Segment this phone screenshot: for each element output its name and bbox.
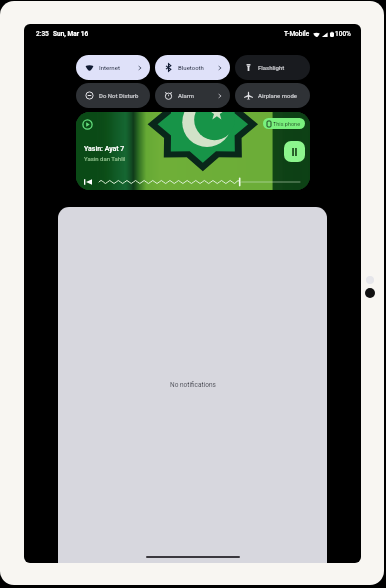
staticText: Flashlight bbox=[258, 64, 285, 71]
button[interactable]: Do Not Disturb bbox=[76, 83, 150, 108]
staticText: This phone bbox=[273, 121, 301, 127]
staticText: Yasin dan Tahlil bbox=[84, 155, 126, 162]
staticText: Yasin: Ayat 7 bbox=[84, 145, 125, 153]
staticText: Bluetooth bbox=[178, 64, 204, 71]
staticText: Alarm bbox=[178, 92, 195, 99]
button[interactable]: Pause bbox=[284, 141, 305, 162]
staticText: Airplane mode bbox=[258, 92, 298, 99]
button[interactable]: Internet bbox=[76, 55, 150, 80]
button[interactable]: Bluetooth bbox=[155, 55, 230, 80]
button[interactable]: Alarm bbox=[155, 83, 230, 108]
staticText: Do Not Disturb bbox=[99, 92, 139, 99]
staticText: No notifications bbox=[170, 381, 216, 389]
button[interactable]: Flashlight bbox=[235, 55, 310, 80]
staticText: 2:35 bbox=[36, 30, 49, 38]
button[interactable]: This phone bbox=[263, 118, 305, 129]
button[interactable]: Previous bbox=[84, 178, 92, 186]
staticText: T-Mobile bbox=[284, 30, 310, 38]
staticText: 100% bbox=[335, 30, 351, 38]
staticText: Sun, Mar 16 bbox=[53, 30, 89, 38]
button[interactable]: Airplane mode bbox=[235, 83, 310, 108]
staticText: Internet bbox=[99, 64, 120, 71]
